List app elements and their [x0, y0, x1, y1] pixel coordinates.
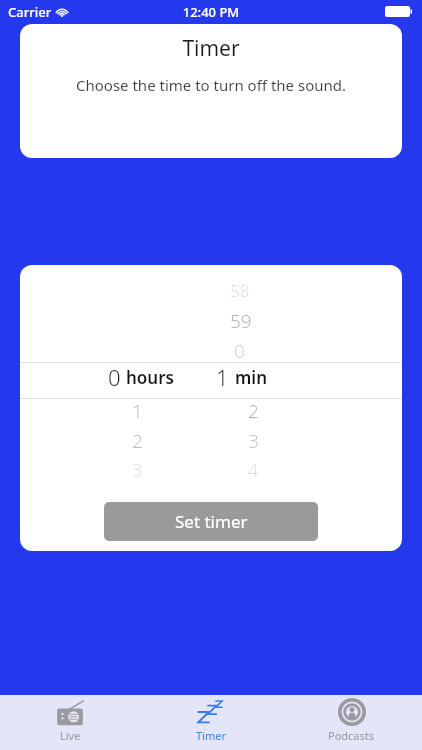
button[interactable]: Podcasts	[281, 695, 422, 750]
staticText: 1	[132, 398, 143, 424]
other: Timer	[196, 700, 226, 726]
other: Live	[55, 700, 85, 726]
staticText: 4	[248, 458, 259, 483]
staticText: Choose the time to turn off the sound.	[20, 75, 402, 95]
staticText: Podcasts	[328, 728, 375, 743]
staticText: 58	[230, 279, 250, 302]
staticText: min	[235, 366, 267, 389]
staticText: 0	[108, 362, 121, 392]
staticText: hours	[126, 366, 174, 389]
button[interactable]: Timer	[140, 695, 281, 750]
staticText: 59	[230, 308, 252, 334]
staticText: 2	[248, 398, 259, 424]
staticText: 12:40 PM	[0, 3, 422, 21]
staticText: 2	[132, 428, 143, 454]
staticText: Timer	[20, 34, 402, 63]
staticText: 0	[234, 338, 245, 364]
staticText: 1	[216, 362, 229, 392]
other: Podcasts	[338, 700, 366, 726]
staticText: Live	[60, 728, 81, 743]
staticText: Timer	[196, 728, 226, 743]
staticText: 3	[132, 458, 143, 483]
staticText: Set timer	[175, 510, 248, 533]
button[interactable]: Live	[0, 695, 140, 750]
button[interactable]: Set timer	[104, 502, 318, 541]
staticText: 3	[248, 428, 259, 454]
staticText: Carrier	[8, 3, 52, 21]
